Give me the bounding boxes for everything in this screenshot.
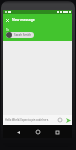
staticText: To <box>6 28 9 32</box>
button[interactable]: Back <box>13 127 23 137</box>
staticText: Sarah Smith <box>14 33 31 37</box>
button[interactable]: Send <box>64 116 72 124</box>
button[interactable]: Recents <box>52 127 62 137</box>
button[interactable]: Close <box>3 16 12 25</box>
staticText: Hello World. Expect a pin code here. <box>5 118 56 122</box>
button[interactable]: Sarah Smith <box>6 32 34 38</box>
button[interactable]: Home <box>33 127 43 137</box>
staticText: New message <box>12 17 35 21</box>
button[interactable]: Attach <box>56 116 64 124</box>
